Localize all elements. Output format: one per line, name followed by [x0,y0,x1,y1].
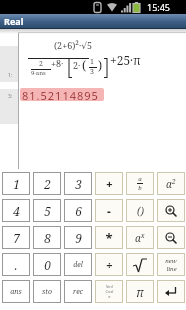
button[interactable]: new [157,253,185,276]
staticText: 2 [44,176,51,192]
staticText: 1 [13,176,20,192]
staticText: 15:45 [147,1,171,13]
staticText: 6 [75,203,82,219]
staticText: 3 [90,67,94,77]
staticText: del [73,260,83,270]
staticText: a [138,175,142,183]
staticText: 5 [44,203,51,219]
staticText: +8· [51,57,64,69]
staticText: 1 [90,57,94,67]
staticText: b [138,184,142,192]
button[interactable] [157,226,185,249]
button[interactable] [157,199,185,222]
staticText: ÷ [106,257,113,272]
staticText: ax [135,231,145,245]
staticText: 0 [44,257,51,273]
button[interactable]: 1 [2,172,30,195]
button[interactable]: . [2,253,30,276]
button[interactable]: 4 [2,199,30,222]
staticText: 3: [8,93,13,100]
staticText: + [106,176,113,191]
button[interactable]: a2 [157,172,185,195]
staticText: ) [98,57,103,73]
staticText: +25·π [110,52,141,68]
staticText: 1: [8,72,13,79]
staticText: 4 [13,203,20,219]
button[interactable]: Sin( [95,280,123,303]
button[interactable]: π [126,280,154,303]
button[interactable]: 7 [2,226,30,249]
staticText: rec [73,287,83,297]
staticText: 3 [75,176,82,192]
button[interactable]: ax [126,226,154,249]
staticText: 8 [44,230,51,246]
button[interactable]: * [95,226,123,249]
staticText: e [108,294,111,299]
staticText: - [107,203,111,219]
staticText: (2+6)²·√5 [54,39,92,51]
button[interactable]: 9 [64,226,92,249]
button[interactable] [157,280,185,303]
staticText: . [14,257,18,273]
button[interactable]: ÷ [95,253,123,276]
staticText: ans [10,287,22,297]
staticText: line [166,265,177,273]
button[interactable]: 3 [64,172,92,195]
button[interactable]: 8 [33,226,61,249]
staticText: 2 [39,59,43,69]
staticText: a2 [166,177,176,191]
button[interactable] [126,253,154,276]
staticText: π [136,284,144,300]
staticText: new [165,257,177,265]
button[interactable]: del [64,253,92,276]
button[interactable]: () [126,199,154,222]
staticText: () [137,204,144,218]
button[interactable]: + [95,172,123,195]
button[interactable]: 5 [33,199,61,222]
staticText: * [105,229,113,247]
button[interactable]: 0 [33,253,61,276]
staticText: sto [42,287,52,297]
button[interactable]: rec [64,280,92,303]
staticText: Real [4,15,24,27]
staticText: 9 [75,230,82,246]
staticText: 81.52114895 [22,88,99,101]
staticText: 7 [13,230,20,246]
staticText: 9·ans [31,69,46,77]
button[interactable]: 6 [64,199,92,222]
button[interactable]: - [95,199,123,222]
button[interactable]: 81.52114895 [20,88,104,101]
button[interactable]: 2 [33,172,61,195]
button[interactable]: ans [2,280,30,303]
button[interactable]: sto [33,280,61,303]
staticText: 2· [73,59,81,71]
staticText: Cos( [105,289,114,294]
staticText: Sin( [106,284,113,289]
button[interactable]: a [126,172,154,195]
staticText: ( [82,57,87,73]
